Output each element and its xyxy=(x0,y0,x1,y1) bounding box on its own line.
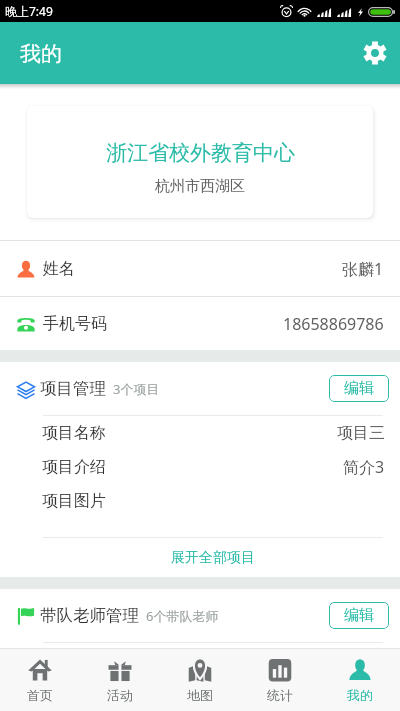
staticText: 我的 xyxy=(347,687,373,703)
staticText: 首页 xyxy=(27,687,53,703)
staticText: 统计 xyxy=(267,687,293,703)
button[interactable]: 编辑 xyxy=(329,375,389,402)
button[interactable]: 地图 xyxy=(160,649,240,711)
staticText: 晚上7:49 xyxy=(5,3,53,19)
staticText: 18658869786 xyxy=(283,313,384,335)
staticText: 简介3 xyxy=(343,456,385,478)
button[interactable]: 项目介绍 xyxy=(0,450,400,484)
staticText: 编辑 xyxy=(344,379,374,398)
staticText: 张麟1 xyxy=(342,258,384,280)
staticText: 带队老师管理 xyxy=(40,605,139,626)
staticText: 项目图片 xyxy=(42,491,106,511)
staticText: 6个带队老师 xyxy=(146,607,219,625)
staticText: 项目管理 xyxy=(40,378,106,399)
button[interactable]: 统计 xyxy=(240,649,320,711)
staticText: 姓名 xyxy=(43,259,75,279)
staticText: 3个项目 xyxy=(113,380,160,398)
staticText: 我的 xyxy=(20,41,62,67)
staticText: 编辑 xyxy=(344,606,374,625)
button[interactable]: 我的 xyxy=(320,649,400,711)
staticText: 项目介绍 xyxy=(42,457,106,477)
staticText: 项目三 xyxy=(337,423,385,443)
button[interactable]: 手机号码 xyxy=(0,297,400,350)
staticText: 活动 xyxy=(107,687,133,703)
staticText: 展开全部项目 xyxy=(171,549,255,567)
staticText: 地图 xyxy=(187,687,213,703)
button[interactable]: 项目图片 xyxy=(0,484,400,518)
button[interactable]: 项目名称 xyxy=(0,416,400,450)
button[interactable]: Settings xyxy=(353,31,397,75)
button[interactable]: 浙江省校外教育中心 xyxy=(27,106,373,218)
staticText: 手机号码 xyxy=(43,314,107,334)
button[interactable]: 展开全部项目 xyxy=(0,538,400,577)
button[interactable]: 首页 xyxy=(0,649,80,711)
staticText: 浙江省校外教育中心 xyxy=(106,140,295,166)
button[interactable]: 活动 xyxy=(80,649,160,711)
staticText: 项目名称 xyxy=(42,423,106,443)
staticText: 杭州市西湖区 xyxy=(155,177,245,196)
button[interactable]: 编辑 xyxy=(329,602,389,629)
button[interactable]: 姓名 xyxy=(0,241,400,296)
